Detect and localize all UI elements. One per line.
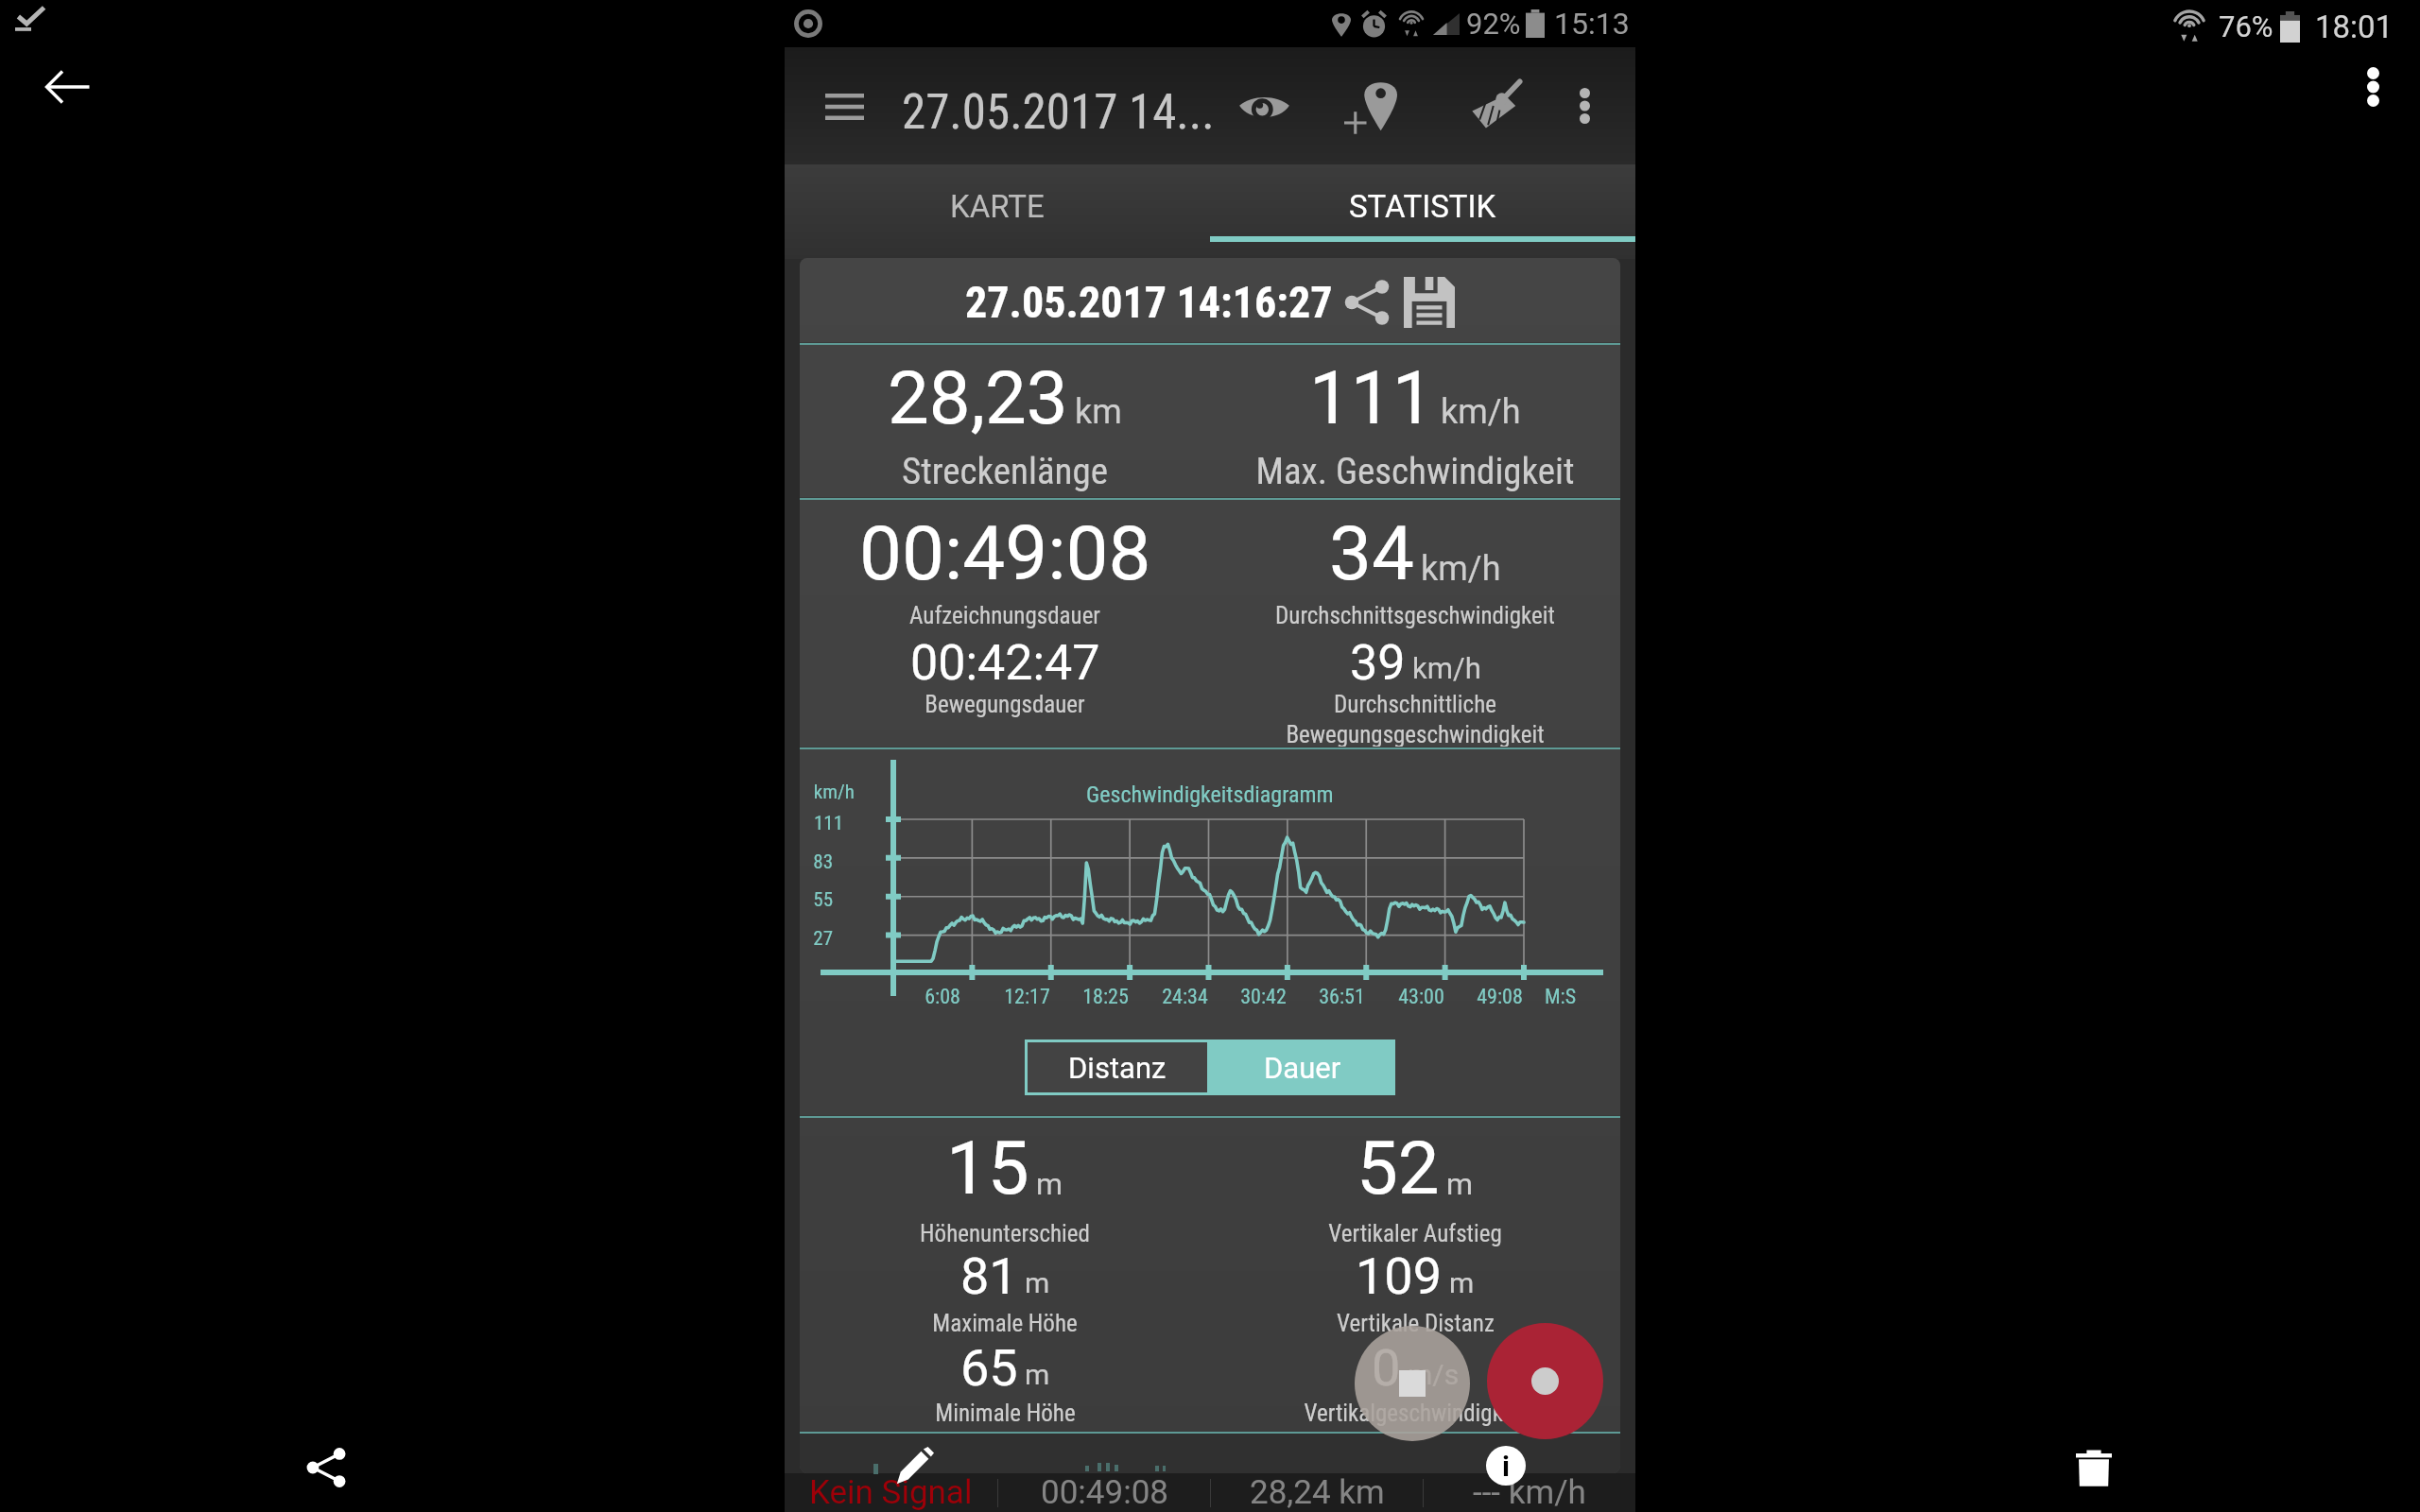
- staticText: Dauer: [1264, 1051, 1341, 1085]
- staticText: m: [1025, 1358, 1050, 1391]
- button[interactable]: KARTE: [785, 159, 1210, 253]
- staticText: Streckenlänge: [902, 450, 1108, 493]
- staticText: 24:34: [1162, 985, 1208, 1009]
- button[interactable]: Info: [1486, 1446, 1526, 1486]
- staticText: 18:25: [1082, 985, 1129, 1009]
- staticText: 76%: [2219, 9, 2273, 43]
- button[interactable]: Distanz: [1028, 1042, 1207, 1092]
- staticText: km/h: [1441, 392, 1521, 432]
- staticText: --- km/h: [1473, 1473, 1586, 1512]
- staticText: 28,23: [888, 355, 1068, 441]
- staticText: m: [1446, 1166, 1474, 1202]
- staticText: STATISTIK: [1349, 188, 1496, 225]
- staticText: 30:42: [1240, 985, 1287, 1009]
- staticText: km/h: [813, 781, 855, 804]
- button[interactable]: Start recording: [1487, 1323, 1603, 1439]
- staticText: 27: [813, 927, 833, 951]
- staticText: km/h: [1421, 549, 1501, 589]
- button[interactable]: Add waypoint: [1335, 68, 1410, 144]
- staticText: km/h: [1412, 651, 1481, 685]
- button[interactable]: Dauer: [1210, 1039, 1395, 1095]
- staticText: 12:17: [1004, 985, 1050, 1009]
- button[interactable]: More options: [1556, 77, 1613, 134]
- staticText: 00:49:08: [859, 509, 1151, 598]
- staticText: Kein Signal: [809, 1473, 973, 1512]
- button[interactable]: Clear track: [1458, 68, 1533, 144]
- staticText: Vertikale Distanz: [1337, 1310, 1495, 1337]
- staticText: Bewegungsdauer: [925, 691, 1085, 718]
- button[interactable]: Save track: [1403, 276, 1456, 329]
- staticText: Max. Geschwindigkeit: [1255, 450, 1575, 493]
- staticText: Distanz: [1068, 1051, 1167, 1085]
- staticText: km: [1075, 392, 1122, 432]
- staticText: 34: [1329, 509, 1414, 598]
- button[interactable]: Show on map: [1226, 68, 1302, 144]
- staticText: 15:13: [1554, 6, 1630, 42]
- staticText: m: [1036, 1166, 1063, 1202]
- staticText: 15: [946, 1125, 1029, 1211]
- staticText: 00:49:08: [1041, 1473, 1168, 1512]
- staticText: 27.05.2017 14:16:27: [965, 277, 1333, 328]
- staticText: 92%: [1466, 7, 1521, 41]
- staticText: 81: [960, 1246, 1018, 1306]
- staticText: 18:01: [2315, 9, 2394, 45]
- staticText: 27.05.2017 14...: [902, 84, 1215, 141]
- staticText: Durchschnittsgeschwindigkeit: [1275, 602, 1555, 629]
- button[interactable]: More options: [2344, 59, 2401, 115]
- staticText: Aufzeichnungsdauer: [909, 602, 1100, 629]
- staticText: Vertikaler Aufstieg: [1328, 1220, 1502, 1247]
- staticText: 28,24 km: [1250, 1473, 1385, 1512]
- staticText: Höhenunterschied: [920, 1220, 1090, 1247]
- staticText: 39: [1350, 634, 1406, 692]
- staticText: 36:51: [1319, 985, 1365, 1009]
- button[interactable]: STATISTIK: [1210, 159, 1635, 253]
- staticText: 65: [960, 1338, 1018, 1398]
- staticText: Minimale Höhe: [935, 1400, 1076, 1427]
- button[interactable]: Stop recording: [1355, 1326, 1470, 1441]
- staticText: KARTE: [950, 188, 1045, 225]
- staticText: Maximale Höhe: [932, 1310, 1078, 1337]
- staticText: i: [1502, 1450, 1510, 1483]
- staticText: m: [1025, 1266, 1050, 1299]
- staticText: m/s: [1408, 1358, 1460, 1391]
- staticText: 111: [1309, 355, 1434, 441]
- button[interactable]: Share track: [1340, 276, 1393, 329]
- button[interactable]: Menu: [810, 73, 878, 141]
- staticText: 109: [1356, 1246, 1443, 1306]
- staticText: m: [1449, 1266, 1475, 1299]
- button[interactable]: Share: [295, 1436, 357, 1499]
- staticText: 6:08: [925, 985, 960, 1009]
- button[interactable]: Back: [40, 59, 96, 115]
- button[interactable]: Delete: [2063, 1436, 2125, 1499]
- staticText: 43:00: [1398, 985, 1444, 1009]
- staticText: 111: [813, 812, 843, 835]
- staticText: 00:42:47: [910, 634, 1100, 692]
- staticText: M:S: [1545, 985, 1577, 1009]
- staticText: 0: [1372, 1338, 1401, 1398]
- staticText: 83: [813, 850, 833, 874]
- staticText: 49:08: [1477, 985, 1523, 1009]
- staticText: Durchschnittliche Bewegungsgeschwindigke…: [1286, 691, 1545, 748]
- staticText: 55: [813, 888, 833, 912]
- staticText: 52: [1357, 1125, 1440, 1211]
- staticText: Vertikalgeschwindigkeit: [1304, 1400, 1527, 1427]
- staticText: Geschwindigkeitsdiagramm: [1086, 782, 1334, 808]
